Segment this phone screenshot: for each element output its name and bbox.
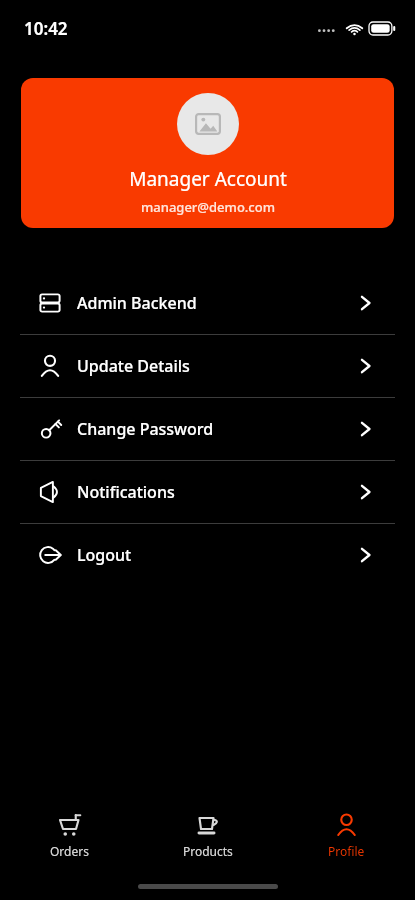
staticText: Admin Backend	[77, 292, 197, 314]
button[interactable]: Admin Backend	[0, 272, 415, 334]
button[interactable]: Profile	[277, 800, 415, 872]
button[interactable]: Logout	[0, 524, 415, 586]
button[interactable]: Notifications	[0, 461, 415, 523]
button[interactable]: Change Password	[0, 398, 415, 460]
staticText: 10:42	[24, 17, 68, 40]
button[interactable]: Update Details	[0, 335, 415, 397]
staticText: Update Details	[77, 355, 190, 377]
staticText: Change Password	[77, 418, 214, 440]
staticText: Notifications	[77, 481, 175, 503]
button[interactable]: Manager Account	[21, 78, 394, 228]
button[interactable]: Products	[139, 800, 277, 872]
staticText: Manager Account	[129, 166, 287, 192]
staticText: manager@demo.com	[141, 198, 275, 216]
staticText: Products	[183, 843, 233, 859]
staticText: Profile	[328, 843, 365, 859]
staticText: Orders	[50, 843, 89, 859]
staticText: Logout	[77, 544, 132, 566]
button[interactable]: Orders	[0, 800, 139, 872]
